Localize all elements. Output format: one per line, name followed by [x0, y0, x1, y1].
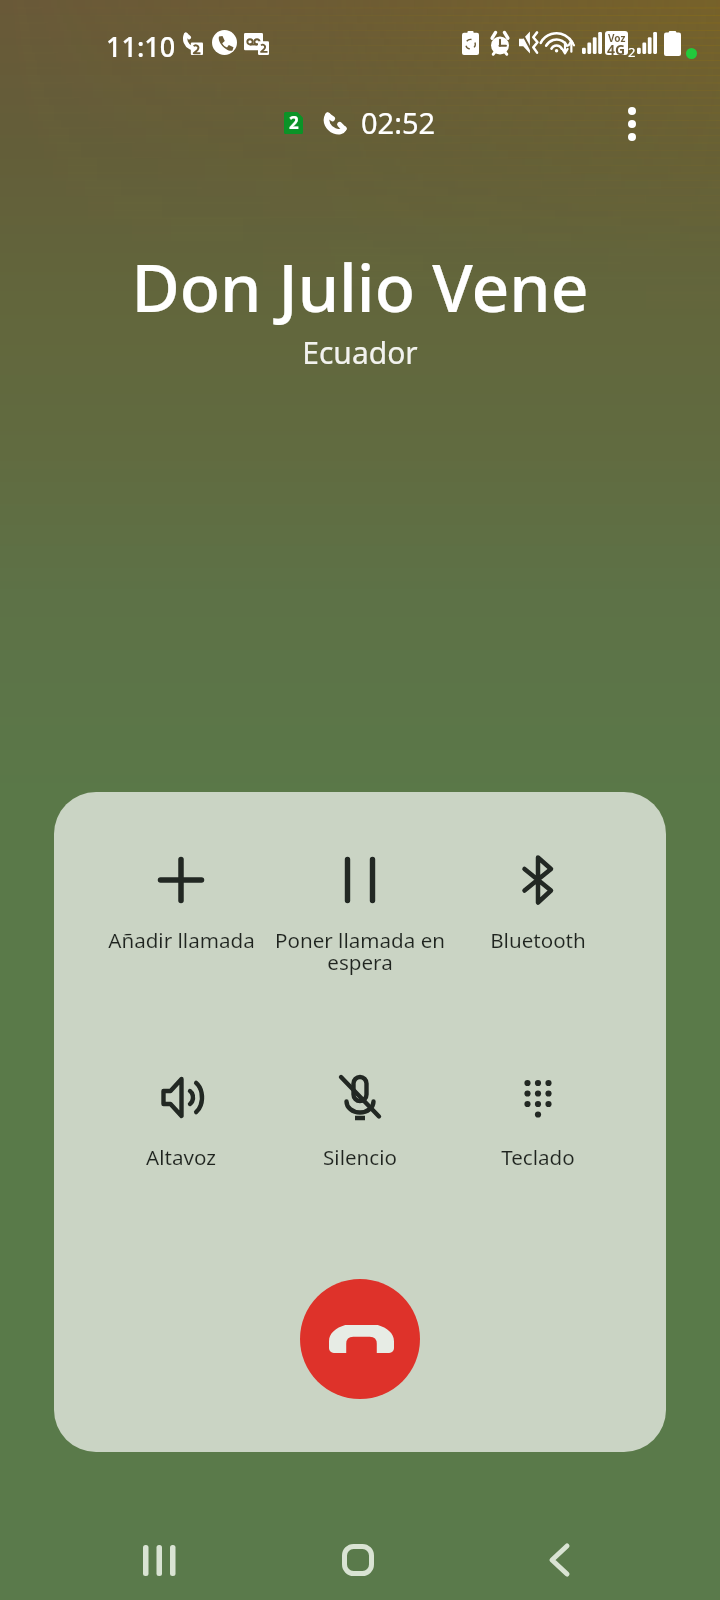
staticText: 11:10: [106, 28, 176, 65]
button[interactable]: Finalizar llamada: [300, 1279, 420, 1399]
staticText: Ecuador: [0, 332, 720, 373]
button[interactable]: Teclado: [446, 1071, 630, 1171]
staticText: Voz: [608, 31, 626, 45]
staticText: Poner llamada en espera: [268, 926, 452, 976]
staticText: Teclado: [501, 1143, 575, 1171]
staticText: Añadir llamada: [108, 926, 255, 954]
staticText: 02:52: [361, 103, 436, 142]
staticText: 2: [289, 111, 299, 133]
staticText: Altavoz: [146, 1143, 216, 1171]
button[interactable]: Silencio: [268, 1071, 452, 1171]
button[interactable]: Altavoz: [89, 1071, 273, 1171]
staticText: Silencio: [323, 1143, 397, 1171]
button[interactable]: Añadir llamada: [89, 854, 273, 954]
button[interactable]: Back: [520, 1520, 600, 1600]
button[interactable]: Home: [318, 1520, 398, 1600]
staticText: 2: [628, 43, 636, 61]
button[interactable]: Recents: [116, 1520, 196, 1600]
staticText: Don Julio Vene: [0, 241, 720, 331]
button[interactable]: More options: [604, 96, 660, 152]
button[interactable]: Poner llamada en espera: [268, 854, 452, 976]
button[interactable]: Bluetooth: [446, 854, 630, 954]
staticText: 4G: [607, 40, 626, 55]
staticText: Bluetooth: [490, 926, 586, 954]
